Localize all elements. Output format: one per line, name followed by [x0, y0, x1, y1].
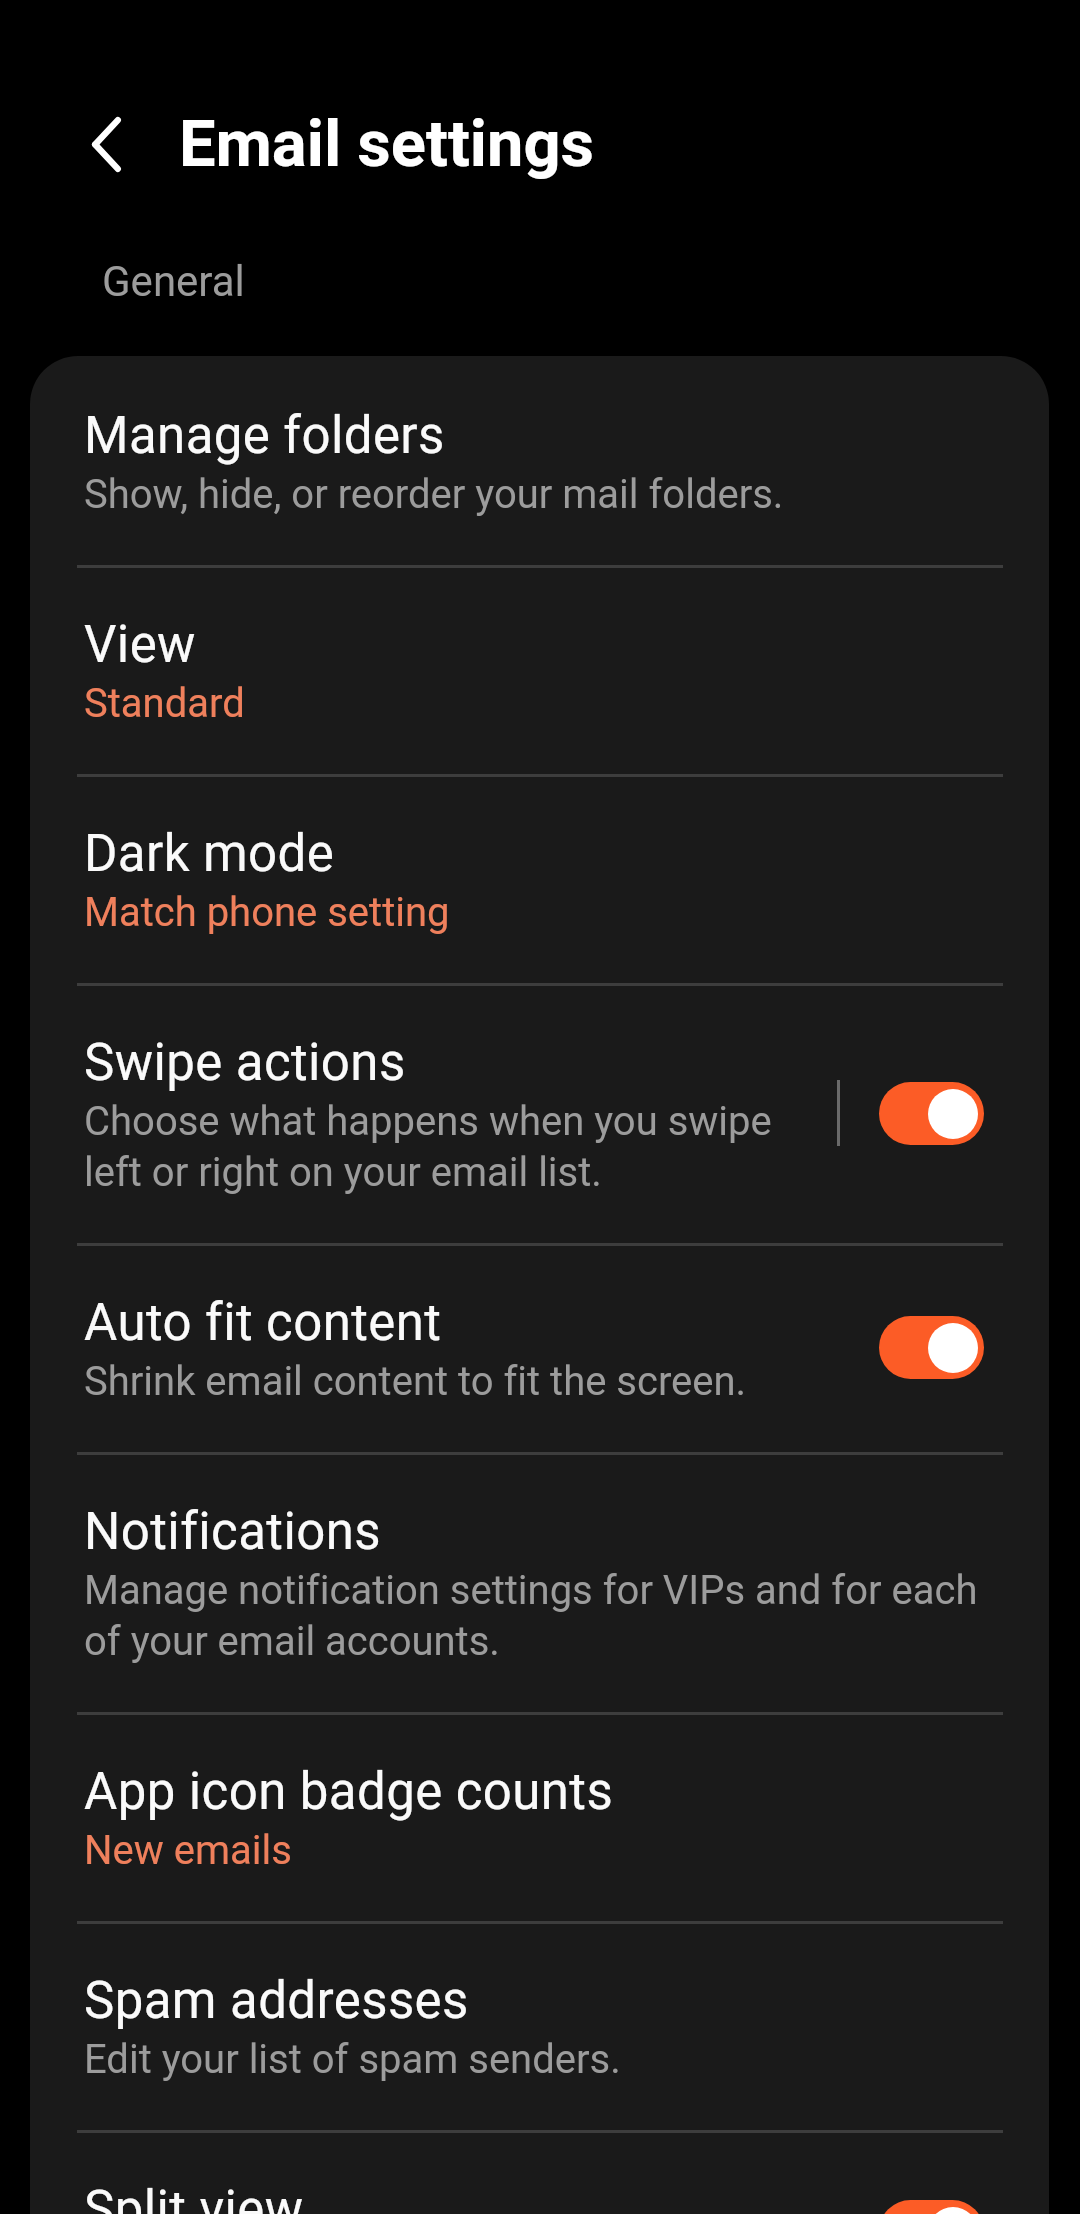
staticText: Notifications [84, 1493, 381, 1564]
button[interactable]: Auto fit content [30, 1246, 1049, 1452]
button[interactable]: App icon badge counts [30, 1715, 1049, 1921]
staticText: Match phone setting [84, 886, 450, 937]
staticText: View [84, 606, 196, 677]
staticText: Edit your list of spam senders. [84, 2033, 621, 2084]
staticText: Dark mode [84, 815, 335, 886]
staticText: Standard [84, 677, 245, 728]
staticText: Swipe actions [84, 1024, 406, 1095]
button[interactable]: Navigate back [73, 111, 139, 177]
button[interactable]: Manage folders [30, 356, 1049, 565]
button[interactable]: Toggle setting on or off [879, 1082, 984, 1145]
staticText: Manage folders [84, 397, 445, 468]
button[interactable]: Swipe actions [30, 986, 1049, 1243]
button[interactable]: Notifications [30, 1455, 1049, 1712]
button[interactable]: View [30, 568, 1049, 774]
button[interactable]: Split view [30, 2133, 1049, 2214]
button[interactable]: Spam addresses [30, 1924, 1049, 2130]
staticText: Choose what happens when you swipe left … [84, 1095, 798, 1197]
staticText: Auto fit content [84, 1284, 442, 1355]
staticText: Manage notification settings for VIPs an… [84, 1564, 998, 1666]
staticText: Split view [84, 2171, 304, 2214]
button[interactable]: Dark mode [30, 777, 1049, 983]
button[interactable]: Toggle setting on or off [879, 2200, 984, 2214]
staticText: Shrink email content to fit the screen. [84, 1355, 747, 1406]
staticText: General [102, 256, 245, 306]
staticText: App icon badge counts [84, 1753, 614, 1824]
staticText: Email settings [179, 106, 595, 182]
staticText: New emails [84, 1824, 292, 1875]
staticText: Spam addresses [84, 1962, 469, 2033]
staticText: Show, hide, or reorder your mail folders… [84, 468, 784, 519]
button[interactable]: Toggle setting on or off [879, 1316, 984, 1379]
